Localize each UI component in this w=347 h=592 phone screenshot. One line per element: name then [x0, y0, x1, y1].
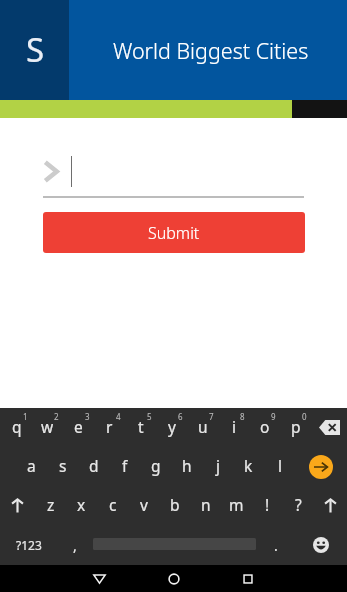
- staticText: f: [122, 455, 128, 476]
- staticText: a: [27, 455, 36, 476]
- staticText: .: [274, 536, 278, 555]
- button[interactable]: Emoji: [295, 525, 347, 565]
- button[interactable]: l: [264, 447, 295, 486]
- staticText: s: [59, 455, 67, 476]
- button[interactable]: w: [32, 408, 63, 447]
- staticText: y: [168, 416, 176, 437]
- button[interactable]: o: [249, 408, 280, 447]
- other: Expand: [43, 160, 59, 183]
- button[interactable]: k: [233, 447, 264, 486]
- staticText: t: [138, 416, 144, 437]
- button[interactable]: ?: [283, 486, 314, 525]
- staticText: b: [170, 494, 180, 515]
- staticText: o: [260, 416, 270, 437]
- button[interactable]: h: [171, 447, 202, 486]
- staticText: p: [291, 416, 301, 437]
- button[interactable]: !: [252, 486, 283, 525]
- button[interactable]: Caps lock: [314, 486, 347, 525]
- staticText: v: [140, 494, 148, 515]
- button[interactable]: t: [125, 408, 156, 447]
- staticText: z: [47, 494, 55, 515]
- staticText: ?123: [16, 537, 42, 553]
- staticText: World Biggest Cities: [113, 36, 309, 65]
- staticText: d: [89, 455, 99, 476]
- staticText: j: [216, 455, 220, 476]
- staticText: 8: [240, 411, 245, 422]
- button[interactable]: c: [97, 486, 128, 525]
- staticText: 5: [147, 411, 152, 422]
- staticText: 6: [178, 411, 183, 422]
- button[interactable]: r: [94, 408, 125, 447]
- staticText: w: [41, 416, 54, 437]
- button[interactable]: s: [47, 447, 78, 486]
- staticText: n: [201, 494, 211, 515]
- staticText: e: [74, 416, 83, 437]
- button[interactable]: d: [78, 447, 109, 486]
- staticText: r: [106, 416, 113, 437]
- staticText: 3: [85, 411, 90, 422]
- button[interactable]: ?123: [0, 525, 57, 565]
- staticText: ,: [73, 536, 77, 555]
- button[interactable]: q: [1, 408, 32, 447]
- button[interactable]: f: [109, 447, 140, 486]
- button[interactable]: Shift: [0, 486, 35, 525]
- staticText: 1: [23, 411, 28, 422]
- button[interactable]: Recent apps: [211, 565, 285, 592]
- button[interactable]: .: [256, 525, 295, 565]
- button[interactable]: e: [63, 408, 94, 447]
- staticText: !: [265, 494, 270, 515]
- button[interactable]: Space: [93, 525, 256, 565]
- button[interactable]: a: [16, 447, 47, 486]
- button[interactable]: v: [128, 486, 159, 525]
- staticText: m: [229, 494, 244, 515]
- button[interactable]: S: [0, 0, 69, 100]
- button[interactable]: Backspace: [311, 408, 347, 447]
- button[interactable]: Back: [62, 565, 137, 592]
- staticText: l: [278, 455, 282, 476]
- button[interactable]: b: [159, 486, 190, 525]
- staticText: u: [198, 416, 208, 437]
- button[interactable]: Enter: [295, 447, 347, 486]
- staticText: g: [151, 455, 161, 476]
- staticText: 9: [271, 411, 276, 422]
- staticText: S: [26, 27, 45, 72]
- button[interactable]: p: [280, 408, 311, 447]
- staticText: x: [77, 494, 86, 515]
- button[interactable]: g: [140, 447, 171, 486]
- staticText: Submit: [148, 222, 200, 244]
- button[interactable]: Home: [137, 565, 211, 592]
- staticText: 0: [302, 411, 307, 422]
- button[interactable]: i: [218, 408, 249, 447]
- button[interactable]: z: [35, 486, 66, 525]
- button[interactable]: y: [156, 408, 187, 447]
- staticText: i: [232, 416, 236, 437]
- button[interactable]: j: [202, 447, 233, 486]
- staticText: 7: [209, 411, 214, 422]
- button[interactable]: x: [66, 486, 97, 525]
- button[interactable]: Submit: [43, 212, 305, 253]
- staticText: c: [109, 494, 117, 515]
- button[interactable]: ,: [57, 525, 93, 565]
- staticText: ?: [295, 494, 302, 515]
- staticText: 4: [116, 411, 121, 422]
- button[interactable]: n: [190, 486, 221, 525]
- button[interactable]: u: [187, 408, 218, 447]
- staticText: q: [12, 416, 22, 437]
- staticText: h: [182, 455, 192, 476]
- button[interactable]: m: [221, 486, 252, 525]
- staticText: 2: [54, 411, 59, 422]
- staticText: k: [244, 455, 253, 476]
